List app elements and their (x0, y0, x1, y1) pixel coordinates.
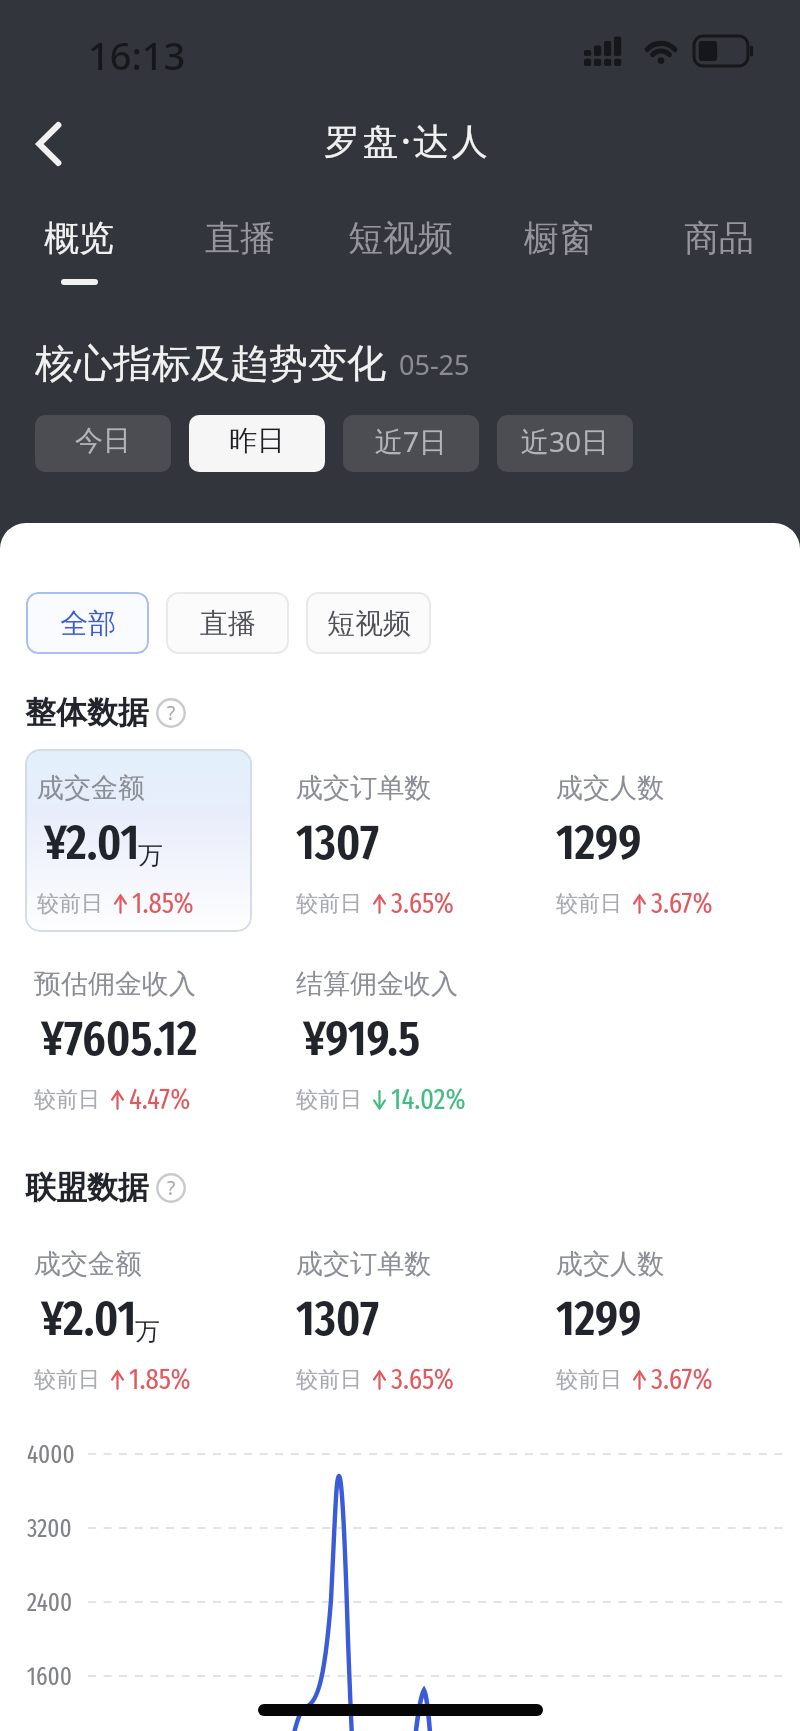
button[interactable]: 近30日 (497, 415, 633, 472)
staticText: 1.85% (129, 1362, 191, 1397)
staticText: 3.65% (391, 886, 454, 921)
staticText: 近7日 (375, 422, 448, 460)
staticText: 直播 (200, 606, 256, 641)
staticText: 1.85% (132, 886, 194, 921)
staticText: 成交人数 (556, 771, 664, 805)
button[interactable]: Help (155, 1172, 187, 1204)
staticText: 成交人数 (556, 1247, 664, 1281)
button[interactable]: 成交金额 (34, 1245, 284, 1415)
button[interactable]: 成交订单数 (296, 769, 546, 939)
staticText: 4.47% (129, 1082, 191, 1117)
staticText: 联盟数据 (25, 1168, 149, 1207)
staticText: 较前日 (296, 1086, 362, 1114)
staticText: 16:13 (88, 29, 186, 81)
staticText: 橱窗 (524, 216, 594, 260)
staticText: 昨日 (229, 423, 285, 458)
staticText: 1307 (296, 813, 379, 872)
button[interactable]: 橱窗 (519, 216, 599, 260)
button[interactable]: 预估佣金收入 (34, 965, 284, 1135)
staticText: 14.02% (391, 1082, 466, 1117)
button[interactable]: 结算佣金收入 (296, 965, 546, 1135)
staticText: 短视频 (348, 216, 453, 260)
staticText: 成交金额 (34, 1247, 142, 1281)
staticText: 3.67% (651, 886, 713, 921)
staticText: 成交订单数 (296, 771, 431, 805)
staticText: 1307 (296, 1289, 379, 1348)
staticText: ? (167, 700, 176, 726)
staticText: 较前日 (296, 890, 362, 918)
staticText: 核心指标及趋势变化 (35, 339, 386, 388)
staticText: 较前日 (34, 1366, 100, 1394)
staticText: 2400 (27, 1588, 73, 1618)
button[interactable]: 短视频 (344, 216, 456, 260)
staticText: 成交订单数 (296, 1247, 431, 1281)
button[interactable]: Back (16, 110, 84, 178)
staticText: 罗盘·达人 (324, 116, 491, 165)
staticText: ¥919.5 (303, 1009, 421, 1068)
button[interactable]: 昨日 (189, 415, 325, 472)
staticText: 短视频 (327, 606, 411, 641)
button[interactable]: 直播 (166, 592, 289, 654)
staticText: 1299 (556, 813, 642, 872)
staticText: 较前日 (34, 1086, 100, 1114)
staticText: 较前日 (556, 890, 622, 918)
button[interactable]: Help (155, 697, 187, 729)
staticText: 4000 (27, 1440, 75, 1470)
staticText: 成交金额 (37, 771, 145, 805)
staticText: 1299 (556, 1289, 642, 1348)
staticText: 万 (135, 1316, 160, 1347)
staticText: 结算佣金收入 (296, 967, 458, 1001)
button[interactable]: 商品 (679, 216, 759, 260)
staticText: 较前日 (296, 1366, 362, 1394)
button[interactable]: 近7日 (343, 415, 479, 472)
staticText: 3.65% (391, 1362, 454, 1397)
staticText: 3200 (27, 1514, 72, 1544)
staticText: 预估佣金收入 (34, 967, 196, 1001)
staticText: 概览 (44, 216, 114, 260)
button[interactable]: 成交人数 (556, 1245, 800, 1415)
staticText: 较前日 (556, 1366, 622, 1394)
staticText: ¥7605.12 (41, 1009, 198, 1068)
staticText: 1600 (27, 1662, 72, 1692)
staticText: 今日 (75, 423, 131, 458)
button[interactable]: 直播 (200, 216, 280, 260)
button[interactable]: 今日 (35, 415, 171, 472)
staticText: 商品 (684, 216, 754, 260)
staticText: 较前日 (37, 890, 103, 918)
staticText: ¥2.01 (41, 1289, 137, 1348)
staticText: 3.67% (651, 1362, 713, 1397)
button[interactable]: 成交订单数 (296, 1245, 546, 1415)
staticText: 近30日 (521, 422, 610, 460)
button[interactable]: 全部 (26, 592, 149, 654)
button[interactable]: 成交人数 (556, 769, 800, 939)
button[interactable]: 短视频 (306, 592, 431, 654)
button[interactable] (25, 749, 252, 932)
staticText: ? (167, 1175, 176, 1201)
button[interactable]: 概览 (39, 216, 119, 285)
staticText: 05-25 (399, 346, 470, 383)
staticText: 万 (138, 840, 163, 871)
staticText: ¥2.01 (44, 813, 140, 872)
staticText: 直播 (205, 216, 275, 260)
button[interactable]: 成交金额 (37, 769, 287, 939)
staticText: 全部 (60, 606, 116, 641)
staticText: 整体数据 (25, 693, 149, 732)
